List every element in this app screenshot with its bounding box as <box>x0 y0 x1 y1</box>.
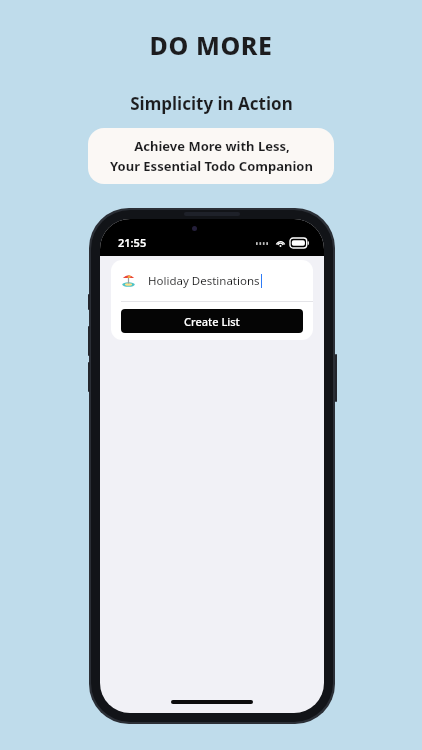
other: Beach umbrella icon <box>121 273 136 288</box>
staticText: DO MORE <box>149 28 273 62</box>
staticText: Simplicity in Action <box>130 92 293 115</box>
staticText: Achieve More with Less, <box>134 137 290 155</box>
staticText: Holiday Destinations <box>148 273 260 289</box>
button[interactable]: Create List <box>121 309 303 333</box>
staticText: Your Essential Todo Companion <box>110 157 313 175</box>
staticText: 21:55 <box>118 235 147 250</box>
staticText: Create List <box>184 314 240 329</box>
button[interactable]: Beach umbrella icon <box>111 260 313 301</box>
